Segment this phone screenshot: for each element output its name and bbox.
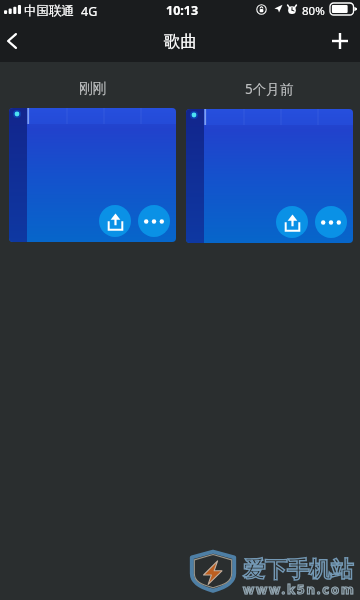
button[interactable]: Share (99, 205, 131, 237)
staticText: 中国联通 (24, 3, 74, 19)
staticText: 爱下手机站 (243, 556, 353, 584)
staticText: 80% (302, 3, 325, 19)
staticText: www.k5n.com (243, 580, 356, 598)
staticText: 10:13 (166, 2, 199, 19)
staticText: 5个月前 (245, 80, 294, 98)
button[interactable]: Share (9, 108, 176, 242)
button[interactable]: Add (316, 21, 360, 61)
button[interactable]: Share (186, 109, 353, 243)
button[interactable]: Back (0, 21, 44, 61)
staticText: 爱下手机站 (243, 556, 353, 584)
button[interactable]: More options (138, 205, 170, 237)
staticText: 刚刚 (79, 80, 106, 97)
staticText: www.k5n.com (243, 580, 356, 598)
staticText: 歌曲 (164, 31, 197, 52)
button[interactable]: More options (315, 206, 347, 238)
staticText: 4G (81, 3, 98, 20)
button[interactable]: Share (276, 206, 308, 238)
